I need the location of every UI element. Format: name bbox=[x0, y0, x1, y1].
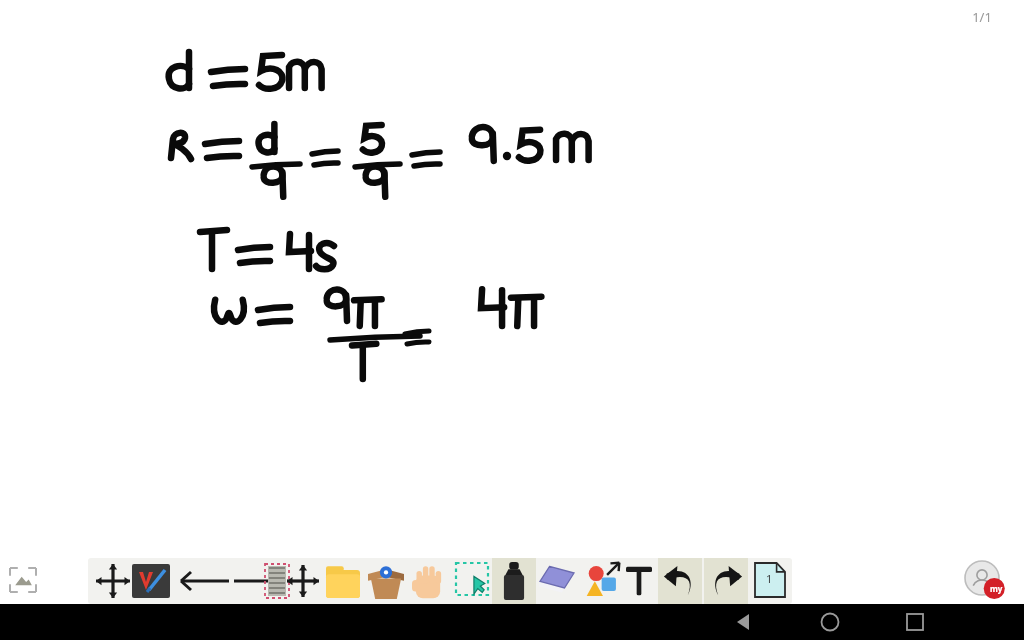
button[interactable]: Insert image bbox=[4, 562, 42, 598]
button[interactable]: Shapes bbox=[580, 558, 622, 604]
staticText: 1 bbox=[766, 571, 773, 586]
button[interactable]: Pen bbox=[492, 558, 534, 604]
button[interactable]: Open folder bbox=[322, 558, 364, 604]
staticText: my bbox=[990, 583, 1003, 594]
button[interactable]: Move bbox=[92, 558, 134, 604]
button[interactable]: Home bbox=[808, 604, 852, 640]
staticText: 1/1 bbox=[972, 8, 992, 26]
button[interactable]: Undo bbox=[658, 558, 700, 604]
button[interactable]: Import bbox=[364, 558, 406, 604]
button[interactable]: Edit note bbox=[130, 558, 172, 604]
button[interactable]: Recent apps bbox=[893, 604, 937, 640]
button[interactable]: Back bbox=[726, 604, 770, 640]
button[interactable]: Hand tool bbox=[408, 558, 450, 604]
button[interactable]: Previous bbox=[182, 558, 224, 604]
button[interactable]: Text bbox=[624, 558, 666, 604]
button[interactable]: Pages bbox=[750, 558, 792, 604]
button[interactable]: Next bbox=[234, 558, 276, 604]
button[interactable]: Redo bbox=[704, 558, 746, 604]
button[interactable]: Page thumbnail bbox=[262, 558, 304, 604]
button[interactable]: Pan bbox=[286, 558, 328, 604]
button[interactable]: Account bbox=[962, 558, 1008, 602]
button[interactable]: Select bbox=[452, 558, 494, 604]
button[interactable]: Eraser bbox=[536, 558, 578, 604]
